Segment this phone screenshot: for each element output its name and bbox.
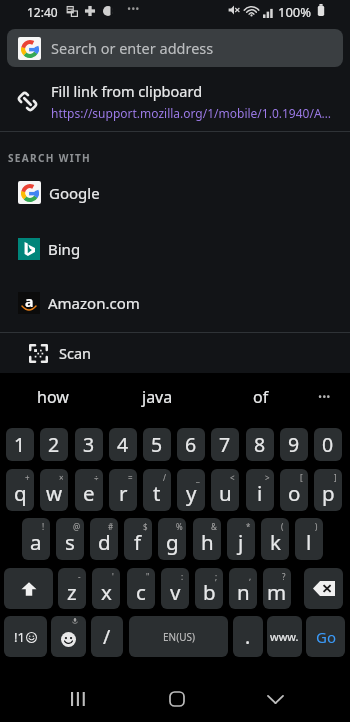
button[interactable]: 7 xyxy=(211,428,239,461)
button[interactable]: k xyxy=(261,518,289,560)
button[interactable]: 1 xyxy=(6,428,34,461)
button[interactable]: Shift xyxy=(4,568,53,609)
button[interactable]: g xyxy=(158,518,186,560)
button[interactable]: s xyxy=(56,518,84,560)
staticText: j xyxy=(238,528,244,556)
staticText: of xyxy=(253,386,269,408)
button[interactable]: 5 xyxy=(143,428,171,461)
staticText: ( xyxy=(281,521,284,532)
staticText: + xyxy=(25,472,30,483)
button[interactable]: 8 xyxy=(246,428,274,461)
button[interactable]: j xyxy=(227,518,255,560)
staticText: Fill link from clipboard xyxy=(51,81,203,101)
button[interactable]: l xyxy=(295,518,323,560)
button[interactable]: . xyxy=(233,616,263,657)
staticText: 3 xyxy=(83,431,95,458)
button[interactable]: u xyxy=(211,469,239,511)
staticText: ÷ xyxy=(94,472,99,483)
button[interactable]: a xyxy=(22,518,50,560)
staticText: 1 xyxy=(14,431,26,458)
staticText: Bing xyxy=(48,239,81,259)
button[interactable]: Scan xyxy=(0,333,350,373)
button[interactable]: / xyxy=(91,616,123,657)
button[interactable]: 2 xyxy=(40,428,68,461)
button[interactable]: how xyxy=(19,373,87,420)
staticText: - xyxy=(78,571,81,582)
staticText: 9 xyxy=(288,431,300,458)
staticText: g xyxy=(166,528,179,556)
staticText: b xyxy=(203,578,216,606)
button[interactable]: Search or enter address xyxy=(7,29,343,67)
staticText: , xyxy=(249,571,252,582)
button[interactable]: Emoji xyxy=(51,616,86,657)
button[interactable]: EN(US) xyxy=(129,616,228,657)
button[interactable]: 9 xyxy=(280,428,308,461)
button[interactable]: !1 xyxy=(4,616,47,657)
button[interactable]: a xyxy=(0,275,350,330)
button[interactable]: java xyxy=(123,373,191,420)
staticText: d xyxy=(98,528,111,556)
staticText: @ xyxy=(73,521,81,532)
staticText: v xyxy=(170,578,181,606)
button[interactable]: n xyxy=(229,568,257,609)
button[interactable]: Fill link from clipboard xyxy=(0,71,350,131)
staticText: 4 xyxy=(117,431,129,458)
button[interactable]: Bing xyxy=(0,221,350,276)
button[interactable]: c xyxy=(127,568,155,609)
staticText: o xyxy=(288,479,301,507)
staticText: EN(US) xyxy=(163,630,195,644)
button[interactable]: Go xyxy=(306,616,345,657)
staticText: [ xyxy=(300,472,303,483)
staticText: 2 xyxy=(48,431,60,458)
button[interactable]: 6 xyxy=(177,428,205,461)
staticText: h xyxy=(201,528,214,556)
staticText: p xyxy=(322,479,335,507)
staticText: e xyxy=(83,479,95,507)
button[interactable]: f xyxy=(124,518,152,560)
staticText: s xyxy=(65,528,75,556)
button[interactable]: r xyxy=(109,469,137,511)
button[interactable]: p xyxy=(314,469,342,511)
staticText: z xyxy=(67,578,77,606)
button[interactable]: of xyxy=(227,373,295,420)
button[interactable]: q xyxy=(6,469,34,511)
button[interactable]: 0 xyxy=(314,428,342,461)
button[interactable]: Google xyxy=(0,165,350,220)
button[interactable]: o xyxy=(280,469,308,511)
button[interactable]: x xyxy=(92,568,120,609)
button[interactable]: Recent apps xyxy=(48,674,108,722)
button[interactable]: Home xyxy=(147,674,207,722)
button[interactable]: y xyxy=(177,469,205,511)
staticText: ] xyxy=(334,472,337,483)
staticText: 12:40 xyxy=(27,4,58,20)
button[interactable]: v xyxy=(161,568,189,609)
staticText: SEARCH WITH xyxy=(8,151,92,165)
button[interactable]: www. xyxy=(267,616,302,657)
button[interactable]: 4 xyxy=(109,428,137,461)
button[interactable]: h xyxy=(193,518,221,560)
button[interactable]: e xyxy=(75,469,103,511)
staticText: a xyxy=(25,292,34,311)
button[interactable]: d xyxy=(90,518,118,560)
staticText: = xyxy=(128,472,133,483)
button[interactable]: b xyxy=(195,568,223,609)
button[interactable]: w xyxy=(40,469,68,511)
staticText: 100% xyxy=(278,3,312,21)
staticText: < xyxy=(230,472,235,483)
button[interactable]: m xyxy=(263,568,291,609)
staticText: . xyxy=(245,623,251,650)
button[interactable]: 3 xyxy=(75,428,103,461)
staticText: # xyxy=(108,521,114,532)
button[interactable]: More suggestions xyxy=(308,380,340,413)
staticText: y xyxy=(186,479,197,507)
staticText: Search or enter address xyxy=(51,38,214,58)
staticText: java xyxy=(142,386,173,408)
button[interactable]: Hide keyboard xyxy=(245,674,305,722)
button[interactable]: z xyxy=(58,568,86,609)
button[interactable]: t xyxy=(143,469,171,511)
button[interactable]: Backspace xyxy=(304,568,343,609)
staticText: f xyxy=(134,528,142,556)
staticText: 5 xyxy=(151,431,163,458)
staticText: i xyxy=(257,479,263,507)
button[interactable]: i xyxy=(246,469,274,511)
